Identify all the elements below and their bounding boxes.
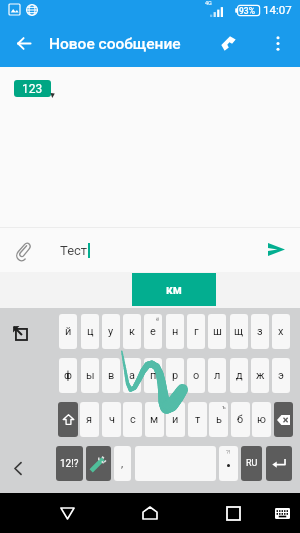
- button[interactable]: д: [230, 358, 248, 393]
- staticText: с: [130, 413, 136, 426]
- staticText: а: [129, 369, 135, 382]
- staticText: ж: [256, 369, 265, 382]
- button[interactable]: Switch keyboard: [265, 503, 299, 523]
- button[interactable]: п: [144, 358, 162, 393]
- button[interactable]: л: [208, 358, 226, 393]
- button[interactable]: Attach: [6, 227, 40, 272]
- staticText: ъ: [222, 403, 226, 410]
- staticText: р: [172, 369, 179, 382]
- button[interactable]: Back: [6, 19, 42, 67]
- button[interactable]: й: [59, 314, 77, 349]
- staticText: г: [194, 325, 199, 338]
- staticText: RU: [246, 458, 258, 469]
- button[interactable]: Language: [241, 446, 262, 481]
- staticText: э: [278, 369, 284, 382]
- button[interactable]: 123: [14, 80, 51, 97]
- staticText: у: [108, 325, 114, 338]
- button[interactable]: Resize keyboard: [6, 319, 34, 347]
- button[interactable]: Call: [208, 19, 248, 67]
- button[interactable]: м: [145, 402, 164, 437]
- staticText: щ: [234, 325, 244, 338]
- button[interactable]: Previous: [5, 455, 31, 481]
- button[interactable]: р: [166, 358, 184, 393]
- button[interactable]: у: [102, 314, 120, 349]
- staticText: д: [236, 369, 243, 382]
- staticText: ,: [121, 457, 124, 470]
- staticText: 14:07: [263, 3, 292, 16]
- button[interactable]: Shift: [58, 402, 78, 437]
- staticText: н: [172, 325, 179, 338]
- staticText: м: [150, 413, 159, 426]
- staticText: Новое сообщение: [49, 35, 181, 53]
- button[interactable]: и: [166, 402, 185, 437]
- button[interactable]: ь: [209, 402, 228, 437]
- button[interactable]: ш: [208, 314, 226, 349]
- button[interactable]: Voice input: [86, 446, 111, 481]
- staticText: 12!?: [60, 458, 79, 470]
- staticText: км: [166, 283, 182, 297]
- button[interactable]: ф: [59, 358, 77, 393]
- button[interactable]: Back: [47, 503, 87, 523]
- staticText: й: [65, 325, 72, 338]
- staticText: ц: [87, 325, 94, 338]
- button[interactable]: ц: [81, 314, 99, 349]
- button[interactable]: ?!: [219, 446, 238, 481]
- staticText: з: [257, 325, 263, 338]
- button[interactable]: Recents: [213, 503, 253, 523]
- button[interactable]: в: [102, 358, 120, 393]
- staticText: о: [193, 369, 200, 382]
- button[interactable]: э: [272, 358, 290, 393]
- button[interactable]: х: [272, 314, 290, 349]
- staticText: е: [150, 325, 156, 338]
- button[interactable]: е: [144, 314, 162, 349]
- staticText: п: [150, 369, 157, 382]
- staticText: ч: [109, 413, 115, 426]
- staticText: ф: [64, 369, 72, 382]
- button[interactable]: о: [187, 358, 205, 393]
- staticText: т: [195, 413, 201, 426]
- button[interactable]: км: [132, 273, 216, 306]
- button[interactable]: Home: [130, 503, 170, 523]
- staticText: х: [278, 325, 284, 338]
- button[interactable]: б: [231, 402, 250, 437]
- button[interactable]: я: [80, 402, 99, 437]
- button[interactable]: ж: [251, 358, 269, 393]
- staticText: ё: [156, 315, 160, 322]
- staticText: в: [108, 369, 115, 382]
- button[interactable]: Send: [258, 227, 294, 272]
- staticText: ?!: [226, 448, 231, 455]
- button[interactable]: Enter: [266, 446, 292, 481]
- staticText: 123: [22, 82, 43, 96]
- staticText: ь: [216, 413, 222, 426]
- button[interactable]: к: [123, 314, 141, 349]
- staticText: ы: [86, 369, 95, 382]
- button[interactable]: щ: [230, 314, 248, 349]
- button[interactable]: ,: [114, 446, 131, 481]
- staticText: 93%: [239, 6, 255, 16]
- staticText: я: [86, 413, 93, 426]
- staticText: 4G: [205, 0, 212, 6]
- staticText: Тест: [60, 243, 88, 258]
- staticText: б: [237, 413, 244, 426]
- button[interactable]: More options: [263, 19, 293, 67]
- button[interactable]: ч: [102, 402, 121, 437]
- staticText: и: [172, 413, 179, 426]
- button[interactable]: ю: [252, 402, 271, 437]
- button[interactable]: с: [123, 402, 142, 437]
- staticText: к: [129, 325, 135, 338]
- button[interactable]: Symbols: [56, 446, 83, 481]
- staticText: ю: [257, 413, 266, 426]
- button[interactable]: а: [123, 358, 141, 393]
- staticText: л: [214, 369, 221, 382]
- button[interactable]: г: [187, 314, 205, 349]
- button[interactable]: Backspace: [274, 402, 293, 437]
- button[interactable]: з: [251, 314, 269, 349]
- button[interactable]: ы: [81, 358, 99, 393]
- button[interactable]: т: [188, 402, 207, 437]
- button[interactable]: н: [166, 314, 184, 349]
- staticText: ш: [213, 325, 222, 338]
